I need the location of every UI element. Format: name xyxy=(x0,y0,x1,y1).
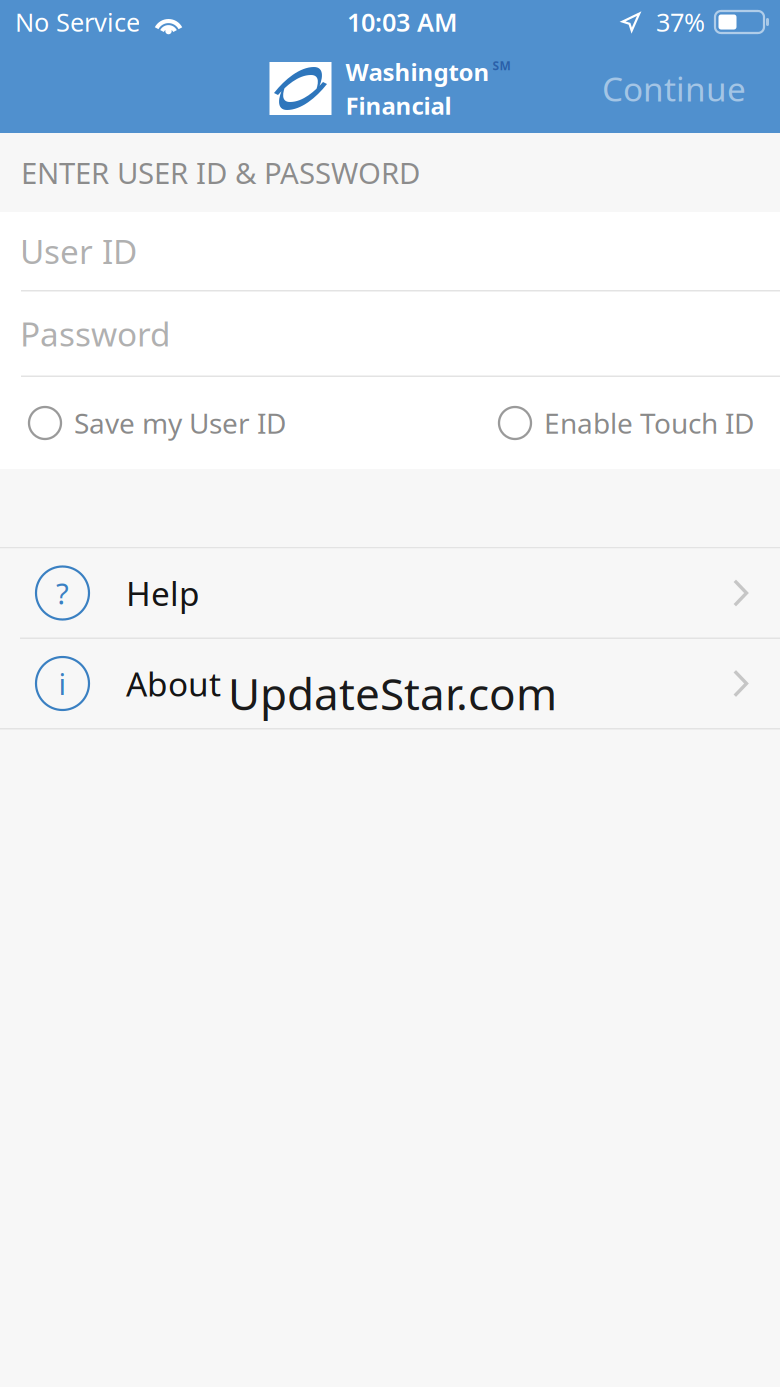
button[interactable]: ? xyxy=(0,548,780,637)
button[interactable]: i xyxy=(0,639,780,728)
staticText: SM xyxy=(492,58,510,73)
button[interactable]: Continue xyxy=(590,54,758,123)
staticText: i xyxy=(58,664,66,703)
button[interactable]: Save my User ID xyxy=(29,394,296,452)
staticText: UpdateStar.com xyxy=(228,664,557,722)
staticText: Washington xyxy=(345,56,489,87)
staticText: Enable Touch ID xyxy=(544,404,754,442)
staticText: User ID xyxy=(20,229,137,273)
staticText: Save my User ID xyxy=(74,404,286,442)
staticText: Password xyxy=(20,311,171,356)
staticText: 10:03 AM xyxy=(347,5,458,39)
staticText: 37% xyxy=(656,5,705,39)
button[interactable]: Enable Touch ID xyxy=(499,394,762,452)
staticText: Help xyxy=(126,571,200,615)
staticText: Continue xyxy=(602,66,746,111)
staticText: About xyxy=(126,661,221,706)
staticText: ? xyxy=(56,573,69,612)
staticText: Financial xyxy=(345,89,451,121)
staticText: ENTER USER ID & PASSWORD xyxy=(21,153,420,192)
staticText: No Service xyxy=(15,5,140,39)
